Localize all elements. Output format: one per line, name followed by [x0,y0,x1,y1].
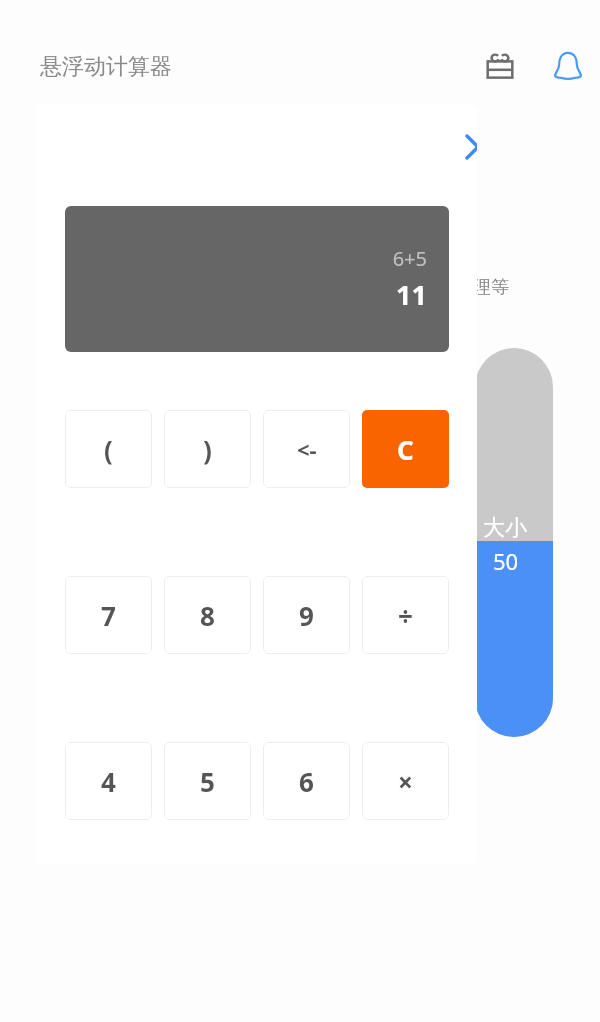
staticText: 8 [200,598,215,633]
button[interactable]: ÷ [362,576,449,654]
staticText: 理等 [473,276,509,299]
button[interactable]: 8 [164,576,251,654]
staticText: ) [203,432,212,467]
button[interactable]: ) [164,410,251,488]
button[interactable]: C [362,410,449,488]
staticText: C [397,432,414,467]
button[interactable]: 7 [65,576,152,654]
staticText: <- [297,434,317,464]
button[interactable]: 6 [263,742,350,820]
button[interactable]: 5 [164,742,251,820]
staticText: 50 [493,546,519,576]
button[interactable]: <- [263,410,350,488]
staticText: 7 [101,598,116,633]
staticText: 6+5 [392,245,427,272]
button[interactable]: × [362,742,449,820]
button[interactable]: Size slider [475,348,553,737]
staticText: × [398,764,413,799]
button[interactable]: ( [65,410,152,488]
button[interactable]: 9 [263,576,350,654]
staticText: 悬浮动计算器 [40,53,172,81]
staticText: 6 [299,764,314,799]
staticText: 大小 [483,514,527,542]
staticText: 4 [101,764,116,799]
button[interactable]: QQ [548,46,588,86]
staticText: ( [104,432,113,467]
staticText: ÷ [398,598,413,633]
staticText: 11 [396,276,427,313]
staticText: 5 [200,764,215,799]
button[interactable]: Gift [481,48,519,86]
button[interactable]: 4 [65,742,152,820]
staticText: 9 [299,598,314,633]
button[interactable]: Close [451,120,477,174]
